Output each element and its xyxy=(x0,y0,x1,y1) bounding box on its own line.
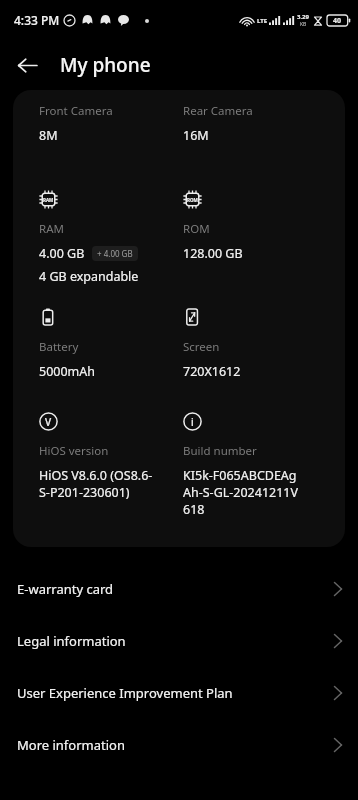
staticText: KB xyxy=(300,21,307,28)
staticText: V xyxy=(45,415,52,429)
staticText: HiOS version xyxy=(39,443,109,459)
button[interactable]: Back xyxy=(6,44,48,86)
button[interactable]: More information xyxy=(0,719,358,771)
staticText: i xyxy=(191,415,194,429)
staticText: Screen xyxy=(183,339,220,355)
staticText: 4.00 GB xyxy=(39,245,85,262)
staticText: E-warranty card xyxy=(17,580,114,598)
staticText: User Experience Improvement Plan xyxy=(17,684,233,702)
button[interactable]: Legal information xyxy=(0,615,358,667)
staticText: ROM xyxy=(187,197,198,203)
staticText: 16M xyxy=(183,127,209,144)
staticText: 4:33 PM xyxy=(14,12,60,28)
staticText: 720X1612 xyxy=(183,363,241,380)
button[interactable]: User Experience Improvement Plan xyxy=(0,667,358,719)
staticText: Rear Camera xyxy=(183,103,253,119)
staticText: 40 xyxy=(333,16,342,26)
staticText: Front Camera xyxy=(39,103,113,119)
button[interactable]: E-warranty card xyxy=(0,563,358,615)
staticText: + 4.00 GB xyxy=(97,248,133,259)
staticText: ROM xyxy=(183,221,210,237)
staticText: HiOS V8.6.0 (OS8.6- S-P201-230601) xyxy=(39,467,153,501)
staticText: 5000mAh xyxy=(39,363,96,380)
staticText: Battery xyxy=(39,339,79,355)
staticText: 128.00 GB xyxy=(183,245,243,262)
staticText: RAM xyxy=(39,221,64,237)
staticText: More information xyxy=(17,736,125,754)
staticText: 4 GB expandable xyxy=(39,268,139,285)
staticText: 3.29 xyxy=(297,13,309,21)
staticText: 8M xyxy=(39,127,58,144)
staticText: Build number xyxy=(183,443,257,459)
staticText: My phone xyxy=(60,52,151,78)
staticText: Legal information xyxy=(17,632,126,650)
staticText: RAM xyxy=(43,197,54,203)
staticText: LTE xyxy=(257,17,268,25)
staticText: KI5k-F065ABCDEAg Ah-S-GL-20241211V 618 xyxy=(183,467,299,518)
